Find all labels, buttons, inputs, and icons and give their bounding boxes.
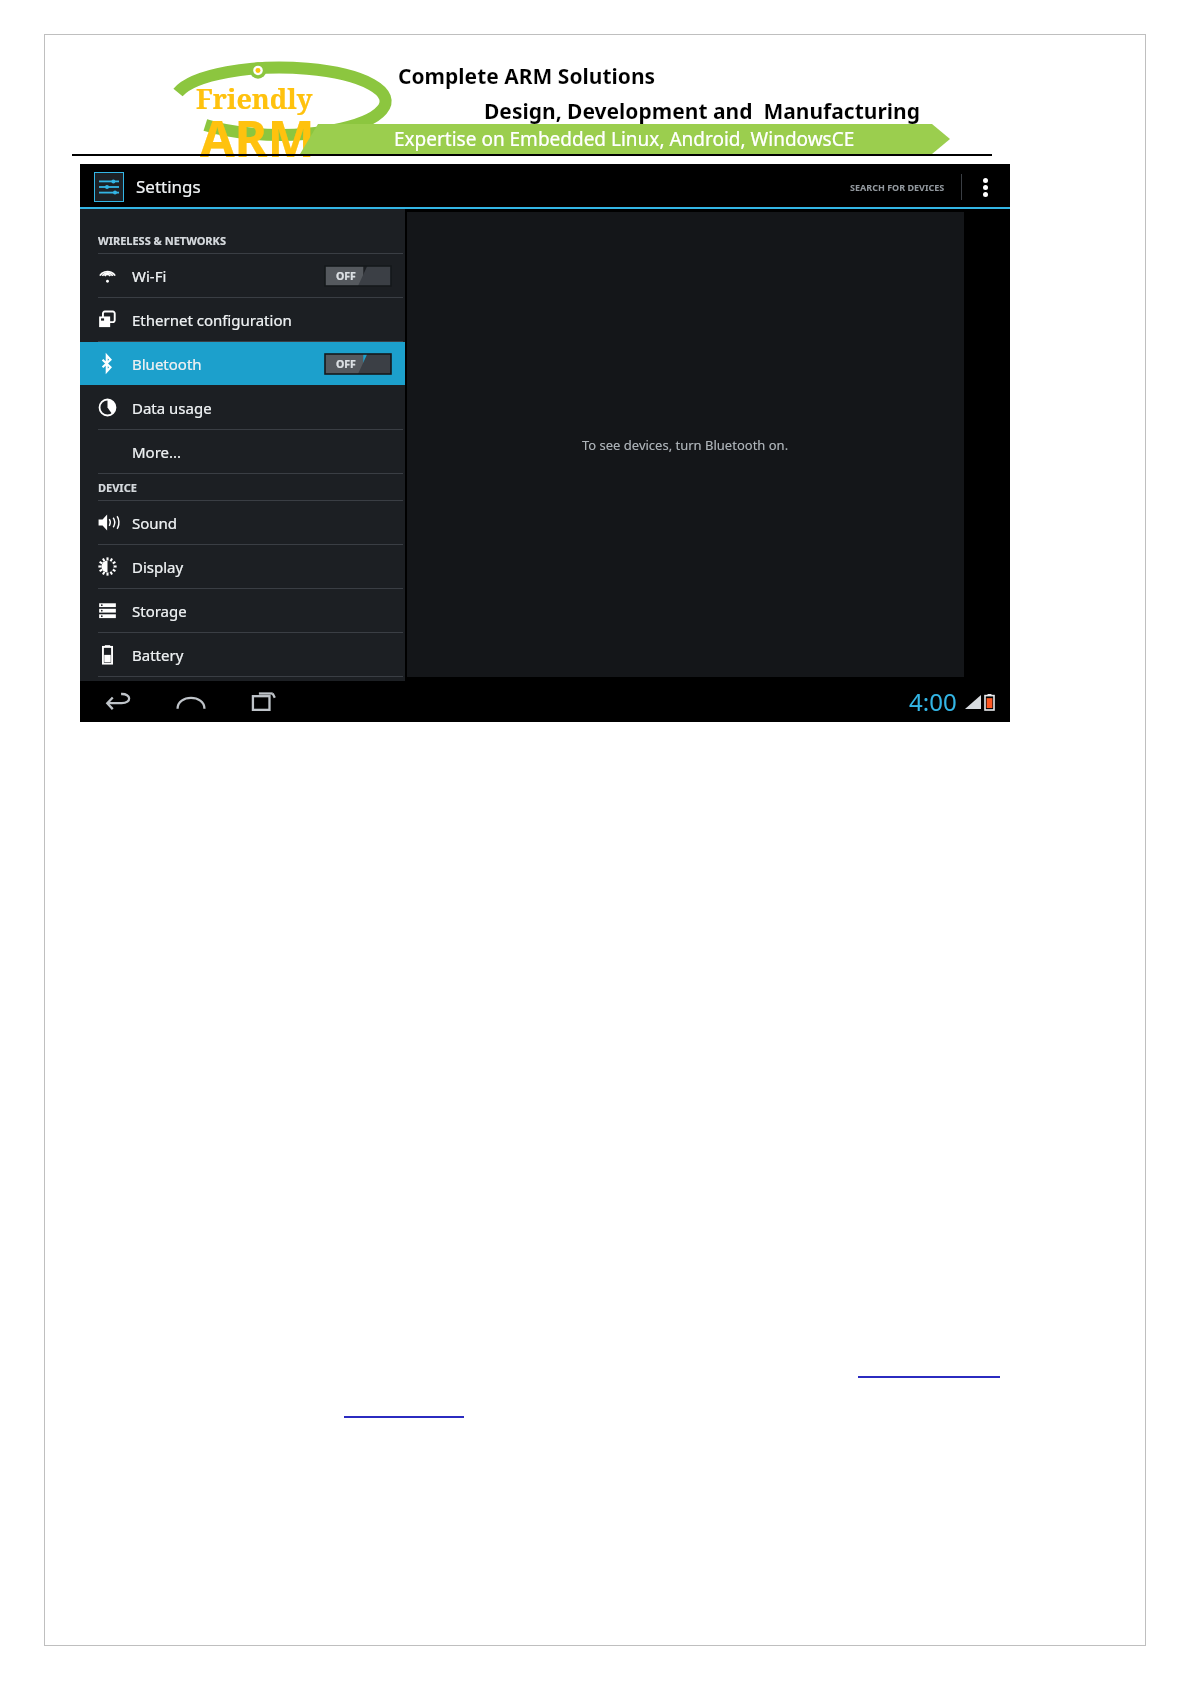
staticText: WIRELESS & NETWORKS [98,233,226,248]
staticText: To see devices, turn Bluetooth on. [582,436,789,454]
button[interactable]: Off toggle [325,266,391,286]
button[interactable]: Sound [80,501,405,544]
staticText: DEVICE [98,480,137,495]
staticText: Friendly [196,80,313,117]
staticText: Complete ARM Solutions [398,62,656,91]
staticText: Display [132,557,184,577]
button[interactable]: Battery [80,633,405,676]
staticText: Settings [136,175,201,198]
staticText: Data usage [132,398,212,418]
button[interactable]: Ethernet configuration [80,298,405,341]
button[interactable]: Back [96,681,142,722]
staticText: ARM [200,104,315,172]
button[interactable]: More options [972,174,998,200]
staticText: Storage [132,601,187,621]
staticText: OFF [336,269,356,283]
staticText: Expertise on Embedded Linux, Android, Wi… [394,126,855,152]
button[interactable]: Data usage [80,386,405,429]
staticText: More... [132,442,182,462]
button[interactable]: SEARCH FOR DEVICES [844,173,951,201]
button[interactable]: Bluetooth [80,342,405,385]
button[interactable]: Recent apps [240,681,286,722]
button[interactable]: Home [168,681,214,722]
staticText: Design, Development and Manufacturing [484,97,921,126]
button[interactable]: More... [80,430,405,473]
staticText: Battery [132,645,184,665]
button[interactable]: Off toggle [325,354,391,374]
staticText: Sound [132,513,178,533]
button[interactable]: Wi-Fi [80,254,405,297]
button[interactable]: Display [80,545,405,588]
staticText: Ethernet configuration [132,310,292,330]
staticText: 4:00 [909,685,957,718]
button[interactable]: Settings [94,172,124,202]
staticText: SEARCH FOR DEVICES [850,181,945,193]
button[interactable]: Status [909,685,994,718]
staticText: OFF [336,357,356,371]
staticText: Wi-Fi [132,266,167,286]
button[interactable]: Storage [80,589,405,632]
staticText: Bluetooth [132,354,202,374]
